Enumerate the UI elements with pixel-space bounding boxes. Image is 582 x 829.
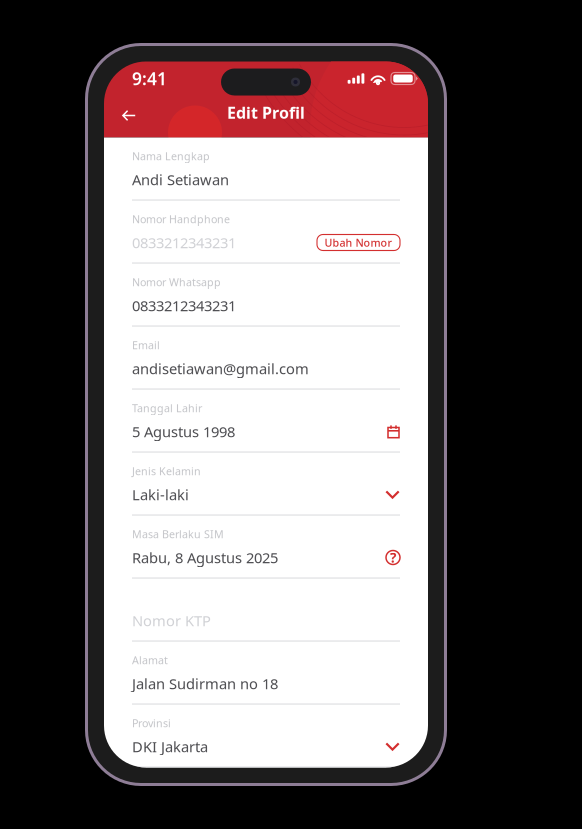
- staticText: 0833212343231: [132, 296, 236, 315]
- button[interactable]: Pick date: [387, 424, 400, 438]
- button[interactable]: Help: [386, 550, 400, 564]
- staticText: Nomor Handphone: [132, 212, 230, 226]
- staticText: Masa Berlaku SIM: [132, 527, 224, 541]
- button[interactable]: Ubah Nomor: [317, 234, 400, 250]
- button[interactable]: Choose option: [385, 740, 400, 753]
- staticText: Rabu, 8 Agustus 2025: [132, 548, 278, 567]
- staticText: Email: [132, 338, 160, 352]
- staticText: ?: [390, 549, 396, 566]
- staticText: Edit Profil: [227, 102, 305, 123]
- staticText: Provinsi: [132, 716, 171, 730]
- staticText: Jalan Sudirman no 18: [132, 674, 278, 693]
- staticText: Alamat: [132, 653, 168, 667]
- staticText: Jenis Kelamin: [132, 464, 201, 478]
- staticText: Tanggal Lahir: [132, 401, 202, 415]
- staticText: 0833212343231: [132, 233, 236, 252]
- staticText: Nama Lengkap: [132, 149, 210, 163]
- staticText: Nomor Whatsapp: [132, 275, 221, 289]
- staticText: 9:41: [132, 67, 167, 90]
- staticText: Andi Setiawan: [132, 170, 229, 189]
- button[interactable]: Back: [116, 101, 142, 129]
- staticText: DKI Jakarta: [132, 737, 208, 756]
- staticText: 5 Agustus 1998: [132, 422, 235, 441]
- staticText: andisetiawan@gmail.com: [132, 359, 309, 378]
- staticText: Nomor KTP: [132, 611, 211, 630]
- staticText: Laki-laki: [132, 485, 189, 504]
- button[interactable]: Choose option: [385, 488, 400, 501]
- staticText: Ubah Nomor: [324, 235, 392, 250]
